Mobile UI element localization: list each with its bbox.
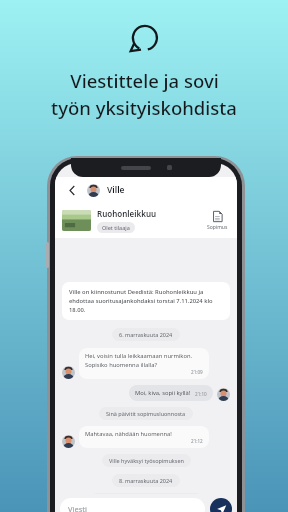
- staticText: Viestittele ja sovi: [70, 68, 219, 93]
- staticText: Mahtavaa, nähdään huomenna!: [85, 430, 172, 438]
- button[interactable]: Send: [210, 498, 232, 512]
- button[interactable]: Mahtavaa, nähdään huomenna!: [79, 426, 209, 448]
- staticText: Sinä päivitit sopimusluonnosta: [106, 410, 186, 417]
- staticText: Moi, kiva, sopii kyllä!: [135, 389, 191, 397]
- button[interactable]: Hei, voisin tulla leikkaamaan nurmikon. …: [79, 348, 209, 379]
- staticText: 8. marraskuuta 2024: [119, 477, 173, 484]
- staticText: Ruohonleikkuu: [97, 208, 157, 219]
- button[interactable]: Sopimus: [205, 211, 230, 231]
- staticText: Hei, voisin tulla leikkaamaan nurmikon. …: [85, 352, 203, 369]
- staticText: 21:10: [195, 391, 207, 397]
- staticText: 6. marraskuuta 2024: [119, 331, 173, 338]
- button[interactable]: Ruohonleikkuu: [55, 203, 237, 238]
- staticText: Olet tilaaja: [102, 224, 130, 231]
- staticText: Viesti: [68, 504, 87, 512]
- staticText: Ville hyväksyi työsopimuksen: [109, 457, 184, 464]
- staticText: Ville: [107, 184, 125, 196]
- button[interactable]: Viesti: [60, 498, 205, 512]
- staticText: Sopimus: [207, 224, 228, 231]
- button[interactable]: Moi, kiva, sopii kyllä!: [129, 385, 213, 401]
- staticText: 21:12: [191, 438, 203, 444]
- staticText: 21:09: [191, 369, 203, 375]
- staticText: työn yksityiskohdista: [51, 95, 237, 120]
- button[interactable]: Back: [63, 181, 81, 199]
- staticText: Ville on kiinnostunut Deedistä: Ruohonle…: [69, 288, 223, 314]
